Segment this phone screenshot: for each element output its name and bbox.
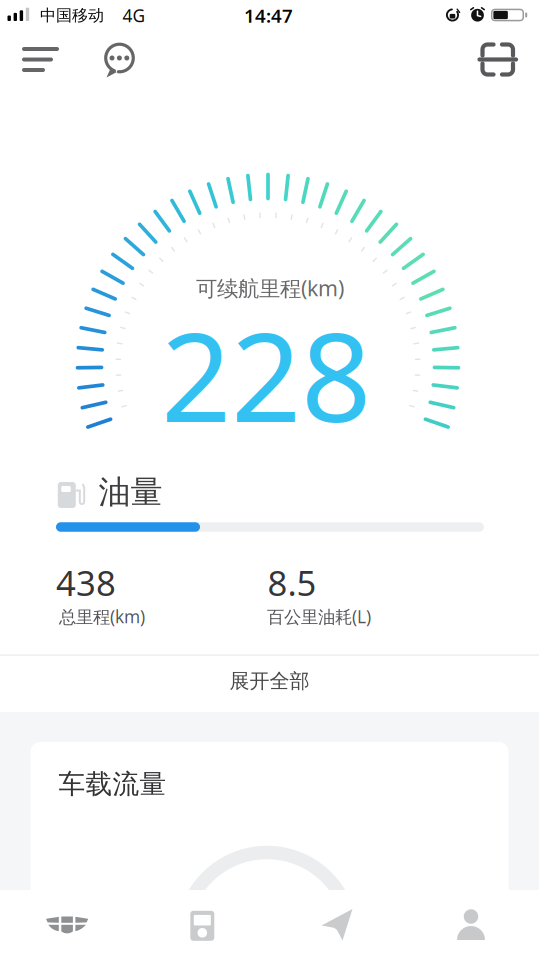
staticText: 8.5 bbox=[267, 559, 316, 605]
staticText: 4G bbox=[122, 4, 145, 27]
staticText: 车载流量 bbox=[58, 768, 166, 800]
staticText: 百公里油耗(L) bbox=[267, 605, 371, 628]
staticText: 中国移动 bbox=[40, 6, 104, 25]
staticText: 可续航里程(km) bbox=[196, 274, 344, 302]
staticText: 展开全部 bbox=[229, 669, 309, 693]
staticText: 14:47 bbox=[244, 3, 293, 28]
staticText: 438 bbox=[56, 559, 116, 605]
staticText: 总里程(km) bbox=[59, 605, 145, 628]
staticText: 油量 bbox=[98, 472, 162, 512]
staticText: 228 bbox=[161, 293, 371, 456]
